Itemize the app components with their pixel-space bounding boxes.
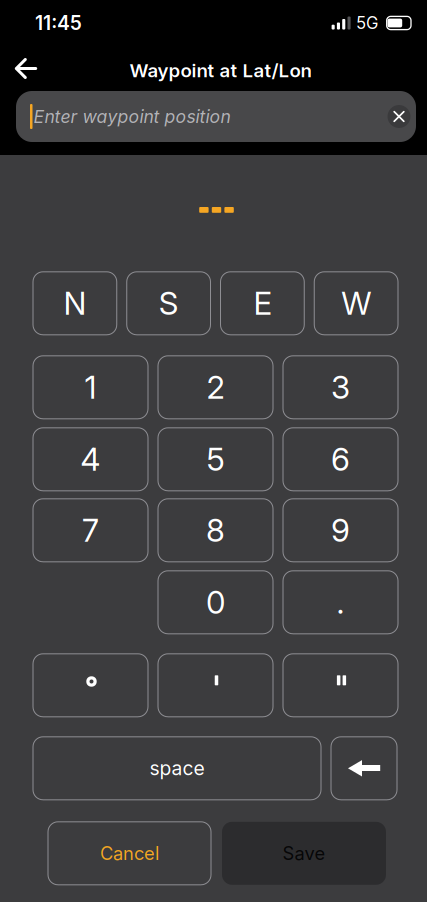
staticText: 1 (84, 368, 96, 406)
staticText: N (63, 284, 86, 322)
staticText: 7 (82, 511, 99, 549)
button[interactable]: Degrees (33, 654, 148, 717)
button[interactable]: 7 (33, 499, 148, 562)
staticText: 3 (331, 368, 350, 406)
staticText: S (159, 284, 179, 322)
staticText: 2 (206, 368, 224, 406)
staticText: 6 (331, 440, 350, 478)
button[interactable]: 4 (33, 428, 148, 491)
staticText: Save (282, 842, 325, 864)
staticText: E (253, 284, 271, 322)
staticText: 5G (356, 13, 378, 33)
staticText: 9 (331, 511, 350, 549)
staticText: Enter waypoint position (33, 106, 230, 127)
button[interactable]: 1 (33, 356, 148, 419)
staticText: W (341, 284, 371, 322)
button[interactable]: space (33, 737, 321, 800)
button[interactable]: Cancel (48, 822, 211, 885)
button[interactable]: W (314, 272, 398, 335)
staticText: 4 (80, 440, 100, 478)
button[interactable]: 6 (283, 428, 398, 491)
button[interactable]: N (33, 272, 117, 335)
button[interactable]: Delete (331, 737, 397, 800)
button[interactable]: Seconds (283, 654, 398, 717)
staticText: space (149, 757, 204, 780)
staticText: 5 (206, 440, 224, 478)
button[interactable]: 5 (158, 428, 273, 491)
staticText: Waypoint at Lat/Lon (129, 59, 311, 82)
button[interactable]: 9 (283, 499, 398, 562)
staticText: Cancel (100, 842, 159, 864)
button[interactable]: Clear text (385, 97, 413, 135)
button[interactable]: 8 (158, 499, 273, 562)
staticText: 8 (206, 511, 225, 549)
button[interactable]: E (220, 272, 304, 335)
button[interactable]: 0 (158, 571, 273, 634)
button[interactable]: Minutes (158, 654, 273, 717)
staticText: 11:45 (35, 11, 82, 35)
button[interactable]: S (127, 272, 211, 335)
staticText: . (336, 583, 344, 621)
button[interactable]: 3 (283, 356, 398, 419)
button[interactable]: . (283, 571, 398, 634)
button[interactable]: 2 (158, 356, 273, 419)
staticText: 0 (206, 583, 225, 621)
button[interactable]: Back (0, 46, 52, 90)
button[interactable]: Save (222, 822, 386, 885)
